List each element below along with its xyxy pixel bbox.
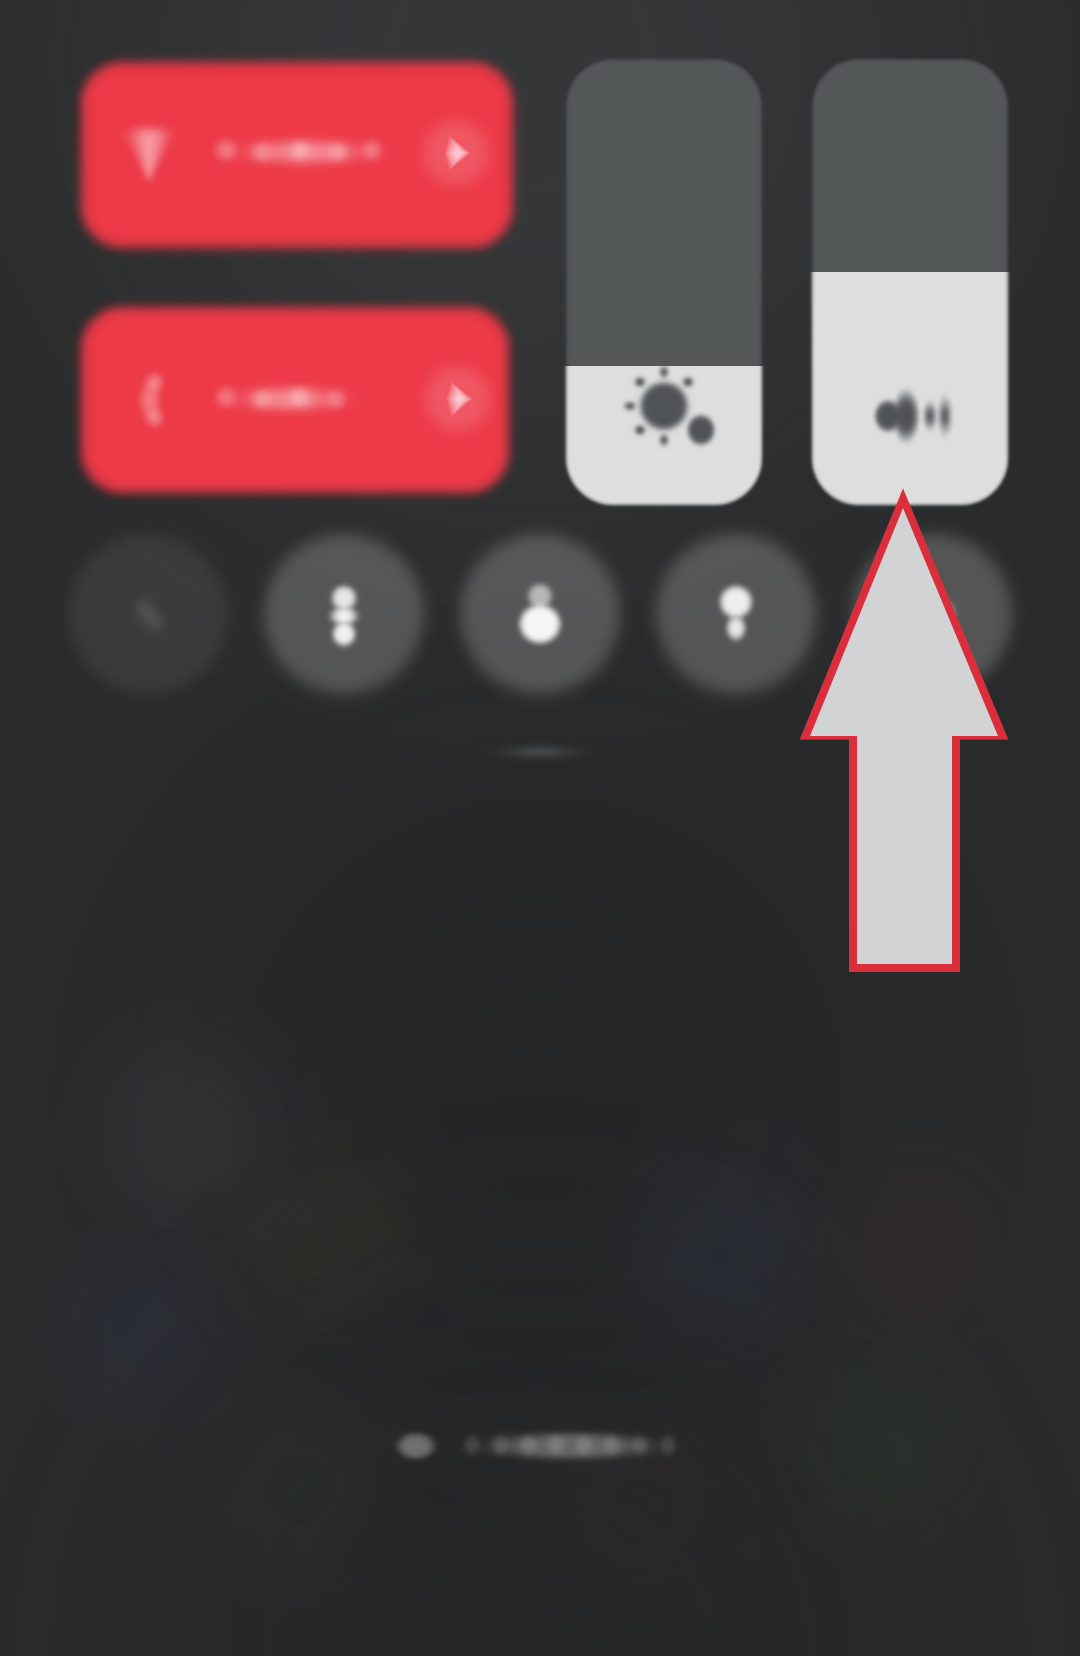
button[interactable]: Control toggle — [0, 0, 1080, 1656]
button[interactable]: Control toggle — [0, 0, 1080, 1656]
button[interactable]: Brightness — [0, 0, 1080, 1656]
button[interactable]: Bluetooth — [0, 0, 1080, 1656]
button[interactable]: Control toggle — [0, 0, 1080, 1656]
button[interactable]: Wi-Fi — [0, 0, 1080, 1656]
button[interactable]: Control toggle — [0, 0, 1080, 1656]
button[interactable]: Volume — [0, 0, 1080, 1656]
button[interactable]: Control toggle — [0, 0, 1080, 1656]
